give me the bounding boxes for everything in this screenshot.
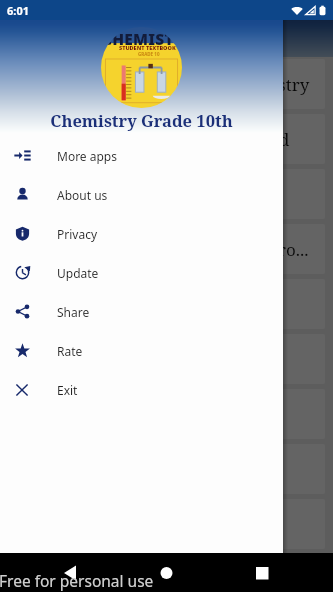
staticText: Rate xyxy=(57,343,83,359)
staticText: STUDENT TEXTBOOK xyxy=(119,44,176,51)
staticText: ro... xyxy=(278,238,309,261)
staticText: More apps xyxy=(57,148,117,164)
button[interactable]: Exit xyxy=(0,370,283,409)
staticText: Privacy xyxy=(57,226,98,242)
staticText: Update xyxy=(57,265,99,281)
staticText: Exit xyxy=(57,382,78,398)
staticText: Chemistry Grade 10th xyxy=(50,109,233,131)
staticText: CHEMISTRY xyxy=(102,28,182,49)
staticText: GRADE 10 xyxy=(138,51,160,57)
staticText: stry xyxy=(278,73,310,96)
button[interactable]: Share xyxy=(0,292,283,331)
button[interactable]: About us xyxy=(0,175,283,214)
button[interactable]: More apps xyxy=(0,136,283,175)
staticText: 6:01 xyxy=(7,3,29,18)
staticText: Free for personal use xyxy=(0,570,154,591)
button[interactable]: Privacy xyxy=(0,214,283,253)
button[interactable]: Rate xyxy=(0,331,283,370)
button[interactable]: Update xyxy=(0,253,283,292)
staticText: About us xyxy=(57,187,108,203)
staticText: d xyxy=(279,128,290,151)
staticText: Share xyxy=(57,304,90,320)
